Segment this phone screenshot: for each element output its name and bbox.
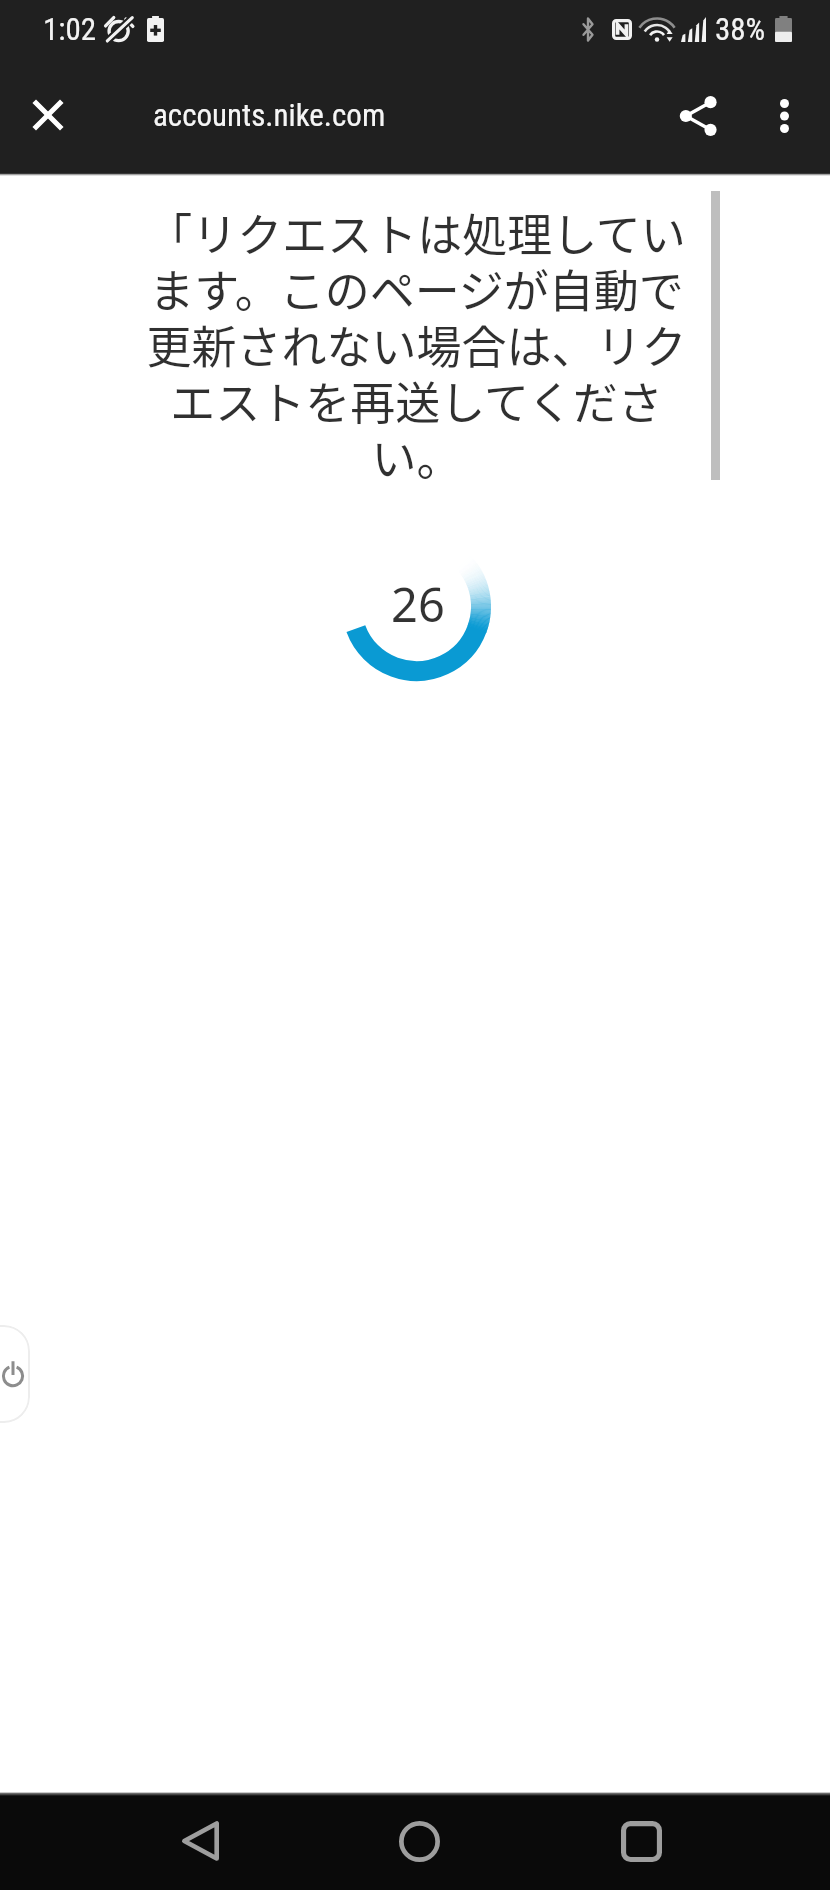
button[interactable]: More options bbox=[742, 73, 827, 158]
button[interactable]: Share bbox=[655, 73, 740, 158]
staticText: 「リクエストは処理しています。このページが自動で更新されない場合は、リクエストを… bbox=[144, 200, 689, 489]
button[interactable]: Recents bbox=[593, 1793, 689, 1889]
button[interactable]: Back bbox=[152, 1793, 248, 1889]
button[interactable]: Close bbox=[8, 75, 88, 155]
staticText: accounts.nike.com bbox=[153, 97, 386, 133]
staticText: 26 bbox=[391, 572, 445, 636]
staticText: 1:02 bbox=[43, 11, 97, 47]
staticText: 38% bbox=[715, 11, 766, 47]
button[interactable]: Home bbox=[371, 1793, 467, 1889]
button[interactable]: Power bbox=[0, 1325, 30, 1423]
